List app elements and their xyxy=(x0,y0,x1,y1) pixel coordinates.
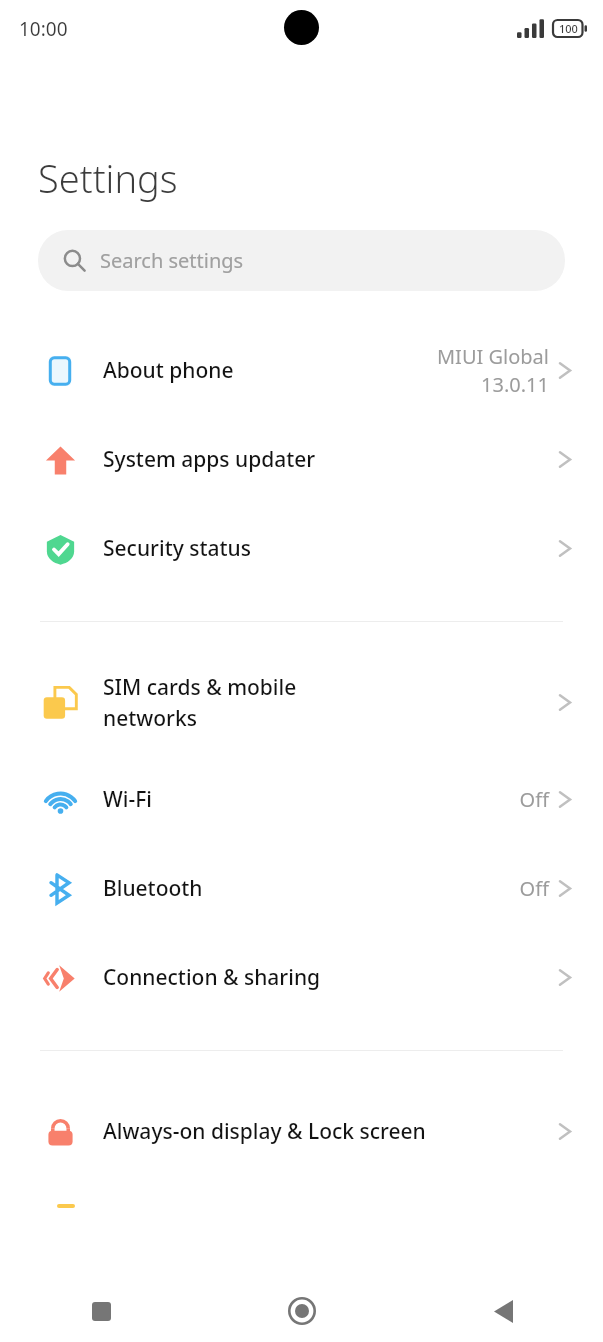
staticText: Off xyxy=(519,875,549,902)
staticText: System apps updater xyxy=(103,445,316,474)
staticText: Security status xyxy=(103,534,251,563)
staticText: Wi-Fi xyxy=(103,785,152,814)
staticText: SIM cards & mobile networks xyxy=(103,673,358,732)
staticText: Off xyxy=(519,786,549,813)
button[interactable]: Bluetooth xyxy=(0,844,603,933)
staticText: About phone xyxy=(103,356,234,385)
staticText: Always-on display & Lock screen xyxy=(103,1117,426,1146)
button[interactable]: Connection & sharing xyxy=(0,933,603,1022)
button[interactable]: Home xyxy=(271,1280,333,1342)
button[interactable]: Recents xyxy=(70,1280,132,1342)
staticText: MIUI Global 13.0.11 xyxy=(436,343,549,398)
staticText: Settings xyxy=(38,152,178,204)
staticText: 10:00 xyxy=(19,16,68,42)
button[interactable]: SIM cards & mobile networks xyxy=(0,650,603,755)
button[interactable]: Search settings xyxy=(38,230,565,291)
button[interactable]: System apps updater xyxy=(0,415,603,504)
staticText: 100 xyxy=(559,21,578,36)
button[interactable]: Back xyxy=(472,1280,534,1342)
button[interactable]: Wi-Fi xyxy=(0,755,603,844)
button[interactable]: About phone xyxy=(0,326,603,415)
staticText: Connection & sharing xyxy=(103,963,321,992)
button[interactable]: Security status xyxy=(0,504,603,593)
staticText: Bluetooth xyxy=(103,874,203,903)
button[interactable]: Always-on display & Lock screen xyxy=(0,1079,603,1184)
staticText: Search settings xyxy=(100,247,244,274)
